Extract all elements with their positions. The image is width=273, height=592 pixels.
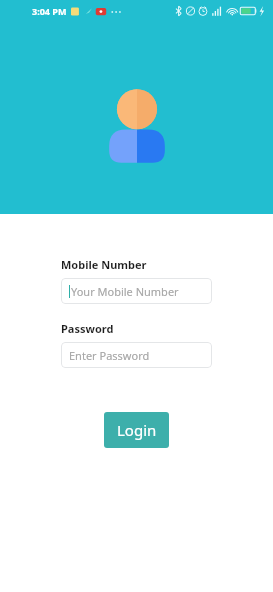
button[interactable]: Enter Password bbox=[61, 342, 212, 368]
staticText: Enter Password bbox=[69, 348, 150, 363]
other: User avatar bbox=[108, 88, 166, 164]
staticText: Password bbox=[61, 321, 114, 336]
staticText: Your Mobile Number bbox=[71, 284, 179, 299]
staticText: Mobile Number bbox=[61, 257, 147, 272]
button[interactable]: Login bbox=[104, 412, 169, 448]
staticText: 3:04 PM bbox=[32, 5, 67, 17]
button[interactable]: Your Mobile Number bbox=[61, 278, 212, 304]
staticText: Login bbox=[117, 420, 157, 440]
